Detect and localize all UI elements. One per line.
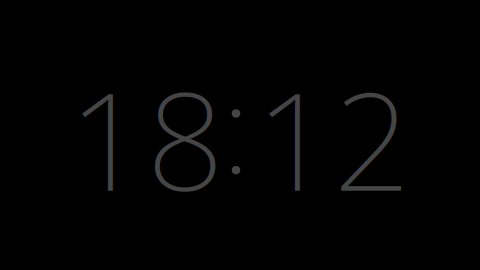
staticText: 18 <box>69 45 225 231</box>
staticText: 12 <box>255 45 411 231</box>
